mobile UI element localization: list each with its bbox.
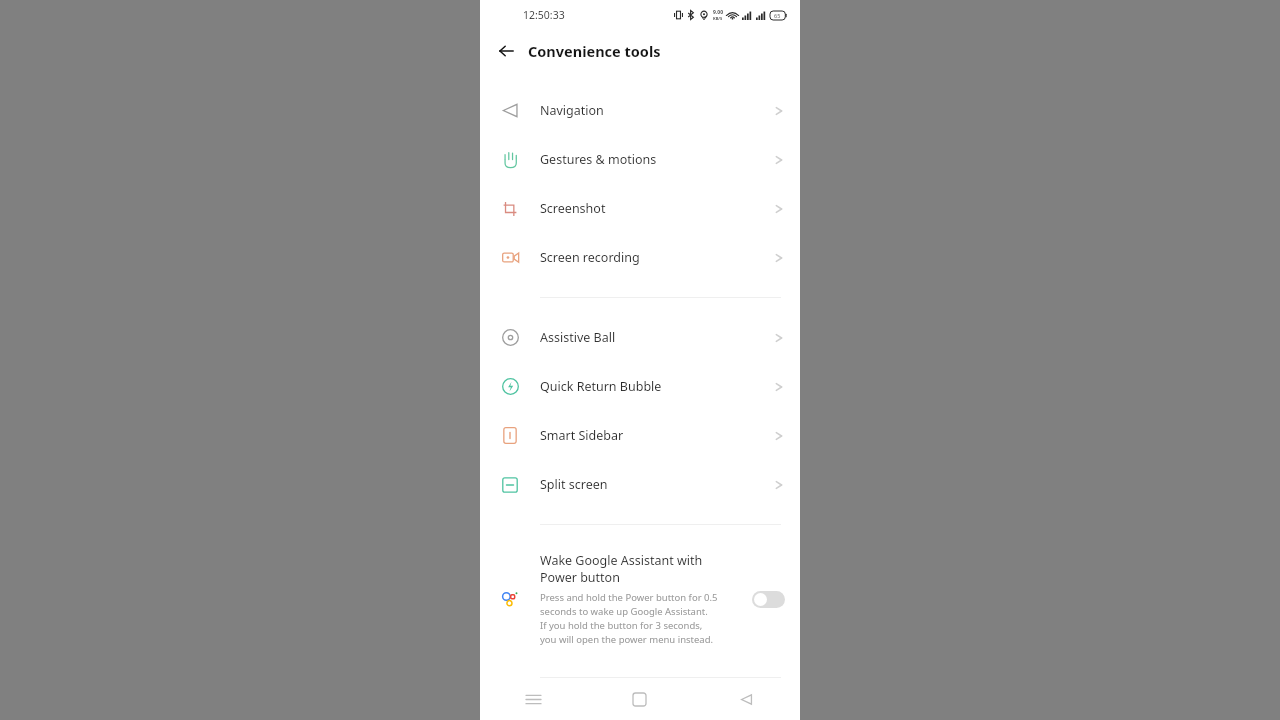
staticText: KB/S [713, 16, 723, 21]
button[interactable]: Back [693, 678, 800, 720]
staticText: Screenshot [540, 200, 773, 217]
button[interactable]: Wake Google Assistant with Power button [480, 540, 800, 658]
staticText: Split screen [540, 476, 773, 493]
staticText: 12:50:33 [523, 8, 565, 22]
button[interactable]: Navigation [480, 86, 800, 135]
button[interactable]: Assistive Ball [480, 313, 800, 362]
staticText: Navigation [540, 102, 773, 119]
staticText: Press and hold the Power button for 0.5 … [540, 591, 718, 646]
staticText: Screen recording [540, 249, 773, 266]
staticText: Wake Google Assistant with Power button [540, 552, 703, 586]
button[interactable]: Split screen [480, 460, 800, 509]
button[interactable]: Screen recording [480, 233, 800, 282]
button[interactable]: Gestures & motions [480, 135, 800, 184]
button[interactable]: Quick Return Bubble [480, 362, 800, 411]
staticText: Smart Sidebar [540, 427, 773, 444]
button[interactable]: Screenshot [480, 184, 800, 233]
staticText: Assistive Ball [540, 329, 773, 346]
button[interactable]: Wake Google Assistant toggle [752, 591, 785, 608]
staticText: Quick Return Bubble [540, 378, 773, 395]
button[interactable]: Back [492, 37, 520, 65]
button[interactable]: Home [586, 678, 693, 720]
staticText: Gestures & motions [540, 151, 773, 168]
button[interactable]: Recents [480, 678, 586, 720]
staticText: Convenience tools [528, 41, 661, 61]
button[interactable]: Smart Sidebar [480, 411, 800, 460]
staticText: 65 [774, 12, 781, 19]
staticText: 9.00 [713, 9, 723, 16]
